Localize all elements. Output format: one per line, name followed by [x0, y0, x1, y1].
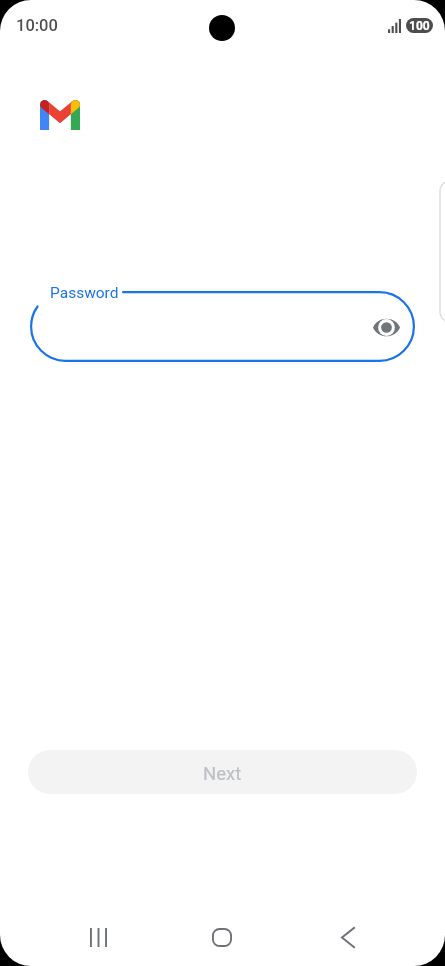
button[interactable]: Show password [365, 306, 407, 348]
button[interactable]: Password [30, 291, 415, 362]
button[interactable]: Next [28, 750, 417, 794]
button[interactable]: Back [324, 913, 372, 961]
staticText: Password [50, 284, 119, 302]
staticText: Next [203, 763, 242, 785]
staticText: 100 [409, 19, 430, 33]
staticText: 10:00 [16, 16, 58, 34]
button[interactable]: Recent apps [74, 913, 122, 961]
button[interactable]: Home [198, 913, 246, 961]
